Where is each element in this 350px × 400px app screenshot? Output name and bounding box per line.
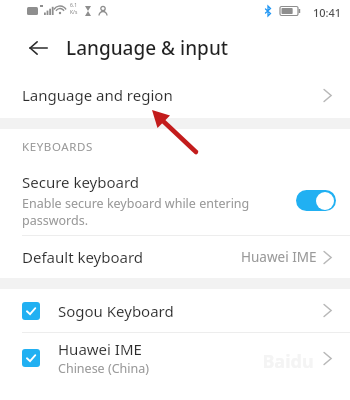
button[interactable]: Enabled: [0, 289, 350, 332]
staticText: Language and region: [22, 85, 173, 105]
staticText: Huawei IME: [241, 248, 317, 266]
button[interactable]: Secure keyboard toggle: [296, 190, 336, 211]
button[interactable]: Back: [22, 32, 54, 64]
staticText: Language & input: [66, 35, 229, 61]
staticText: KEYBOARDS: [22, 139, 93, 155]
button[interactable]: Enabled: [22, 302, 40, 320]
button[interactable]: Default keyboard: [0, 236, 350, 278]
button[interactable]: Enabled: [0, 333, 350, 383]
staticText: 10:41: [313, 5, 342, 20]
staticText: Chinese (China): [58, 360, 150, 377]
staticText: Huawei IME: [58, 339, 142, 359]
staticText: Secure keyboard: [22, 172, 140, 192]
staticText: Default keyboard: [22, 247, 144, 267]
staticText: Sogou Keyboard: [58, 301, 174, 321]
staticText: K/s: [70, 9, 78, 16]
button[interactable]: Language and region: [0, 72, 350, 118]
staticText: 6.1: [70, 2, 78, 9]
button[interactable]: Enabled: [22, 349, 40, 367]
staticText: Baidu: [262, 349, 314, 374]
button[interactable]: Secure keyboard: [0, 165, 350, 235]
staticText: Enable secure keyboard while entering pa…: [22, 195, 286, 228]
